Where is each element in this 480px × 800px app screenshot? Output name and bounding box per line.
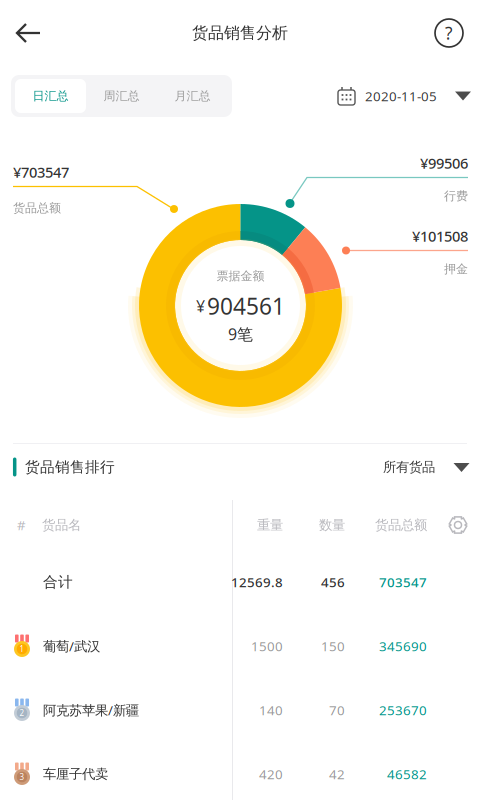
staticText: 票据金额 [216,269,264,283]
staticText: 9笔 [228,323,253,345]
button[interactable]: 合计 [0,550,480,614]
staticText: 12569.8 [231,573,283,591]
staticText: ¥101508 [412,226,468,246]
button[interactable]: Back [6,9,54,57]
staticText: 1500 [251,637,283,655]
staticText: 月汇总 [174,89,210,103]
staticText: 345690 [379,637,427,655]
staticText: 货品总额 [375,517,427,533]
staticText: 150 [321,637,345,655]
staticText: 420 [259,765,283,783]
staticText: 周汇总 [103,89,139,103]
staticText: 253670 [379,701,427,719]
staticText: 货品总额 [13,201,61,215]
staticText: ¥99506 [420,153,468,173]
staticText: 3 [19,772,24,782]
staticText: # [17,516,26,534]
button[interactable]: 2 [0,678,480,742]
button[interactable]: 3 [0,742,480,800]
staticText: 456 [321,573,345,591]
staticText: ? [445,21,453,44]
staticText: 1 [19,644,24,654]
button[interactable]: Help [426,10,472,56]
staticText: 货品名 [42,517,81,533]
staticText: 货品销售排行 [25,458,115,476]
staticText: 904561 [207,291,285,321]
staticText: 押金 [444,262,468,276]
staticText: 重量 [257,517,283,533]
button[interactable]: 1 [0,614,480,678]
staticText: 车厘子代卖 [43,766,108,782]
staticText: 数量 [319,517,345,533]
staticText: 70 [329,701,345,719]
staticText: 46582 [387,765,427,783]
staticText: 2020-11-05 [365,87,437,105]
button[interactable]: 所有货品 [359,444,469,490]
staticText: 合计 [43,573,73,591]
staticText: 140 [259,701,283,719]
button[interactable]: 2020-11-05 [337,86,471,105]
staticText: 葡萄/武汉 [43,637,100,655]
staticText: 42 [329,765,345,783]
button[interactable]: 月汇总 [157,79,228,113]
staticText: 703547 [379,573,427,591]
staticText: 2 [19,708,24,718]
staticText: 所有货品 [383,459,435,475]
button[interactable]: Column settings [444,511,472,539]
staticText: ¥703547 [13,162,69,182]
button[interactable]: 日汇总 [15,79,86,113]
button[interactable]: 周汇总 [86,79,157,113]
staticText: ¥ [196,295,205,317]
staticText: 阿克苏苹果/新疆 [43,701,139,719]
staticText: 日汇总 [32,89,68,103]
staticText: 货品销售分析 [192,23,288,43]
staticText: 行费 [444,189,468,203]
